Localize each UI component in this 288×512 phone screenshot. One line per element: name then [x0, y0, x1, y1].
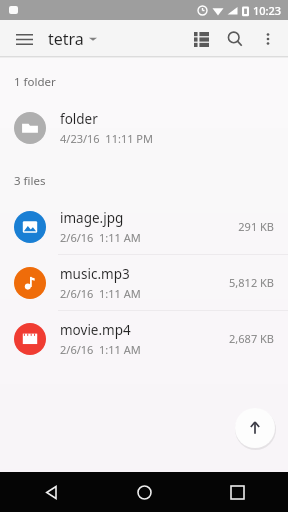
button[interactable]: Recent apps: [220, 475, 254, 509]
button[interactable]: Open navigation drawer: [8, 23, 40, 55]
staticText: 2,687 KB: [229, 331, 274, 346]
button[interactable]: Back: [34, 475, 68, 509]
staticText: 2/6/16 1:11 AM: [60, 286, 141, 301]
button[interactable]: image.jpg: [0, 199, 288, 254]
button[interactable]: More options: [252, 23, 284, 55]
staticText: folder: [60, 110, 98, 128]
staticText: 2/6/16 1:11 AM: [60, 230, 141, 245]
staticText: 2/6/16 1:11 AM: [60, 342, 141, 357]
button[interactable]: Home: [127, 475, 161, 509]
staticText: 291 KB: [238, 219, 274, 234]
button[interactable]: Go to parent folder: [235, 408, 275, 448]
button[interactable]: folder: [0, 100, 288, 155]
staticText: 1 folder: [14, 74, 56, 90]
staticText: 10:23: [253, 3, 282, 18]
staticText: music.mp3: [60, 265, 130, 283]
button[interactable]: movie.mp4: [0, 311, 288, 366]
staticText: 4/23/16 11:11 PM: [60, 131, 153, 146]
button[interactable]: Search: [218, 22, 252, 56]
staticText: tetra: [48, 28, 84, 50]
button[interactable]: tetra: [46, 24, 99, 54]
button[interactable]: Toggle list view: [184, 22, 218, 56]
staticText: image.jpg: [60, 209, 124, 227]
staticText: 3 files: [14, 173, 46, 189]
button[interactable]: music.mp3: [0, 255, 288, 310]
staticText: 5,812 KB: [229, 275, 274, 290]
staticText: movie.mp4: [60, 321, 131, 339]
